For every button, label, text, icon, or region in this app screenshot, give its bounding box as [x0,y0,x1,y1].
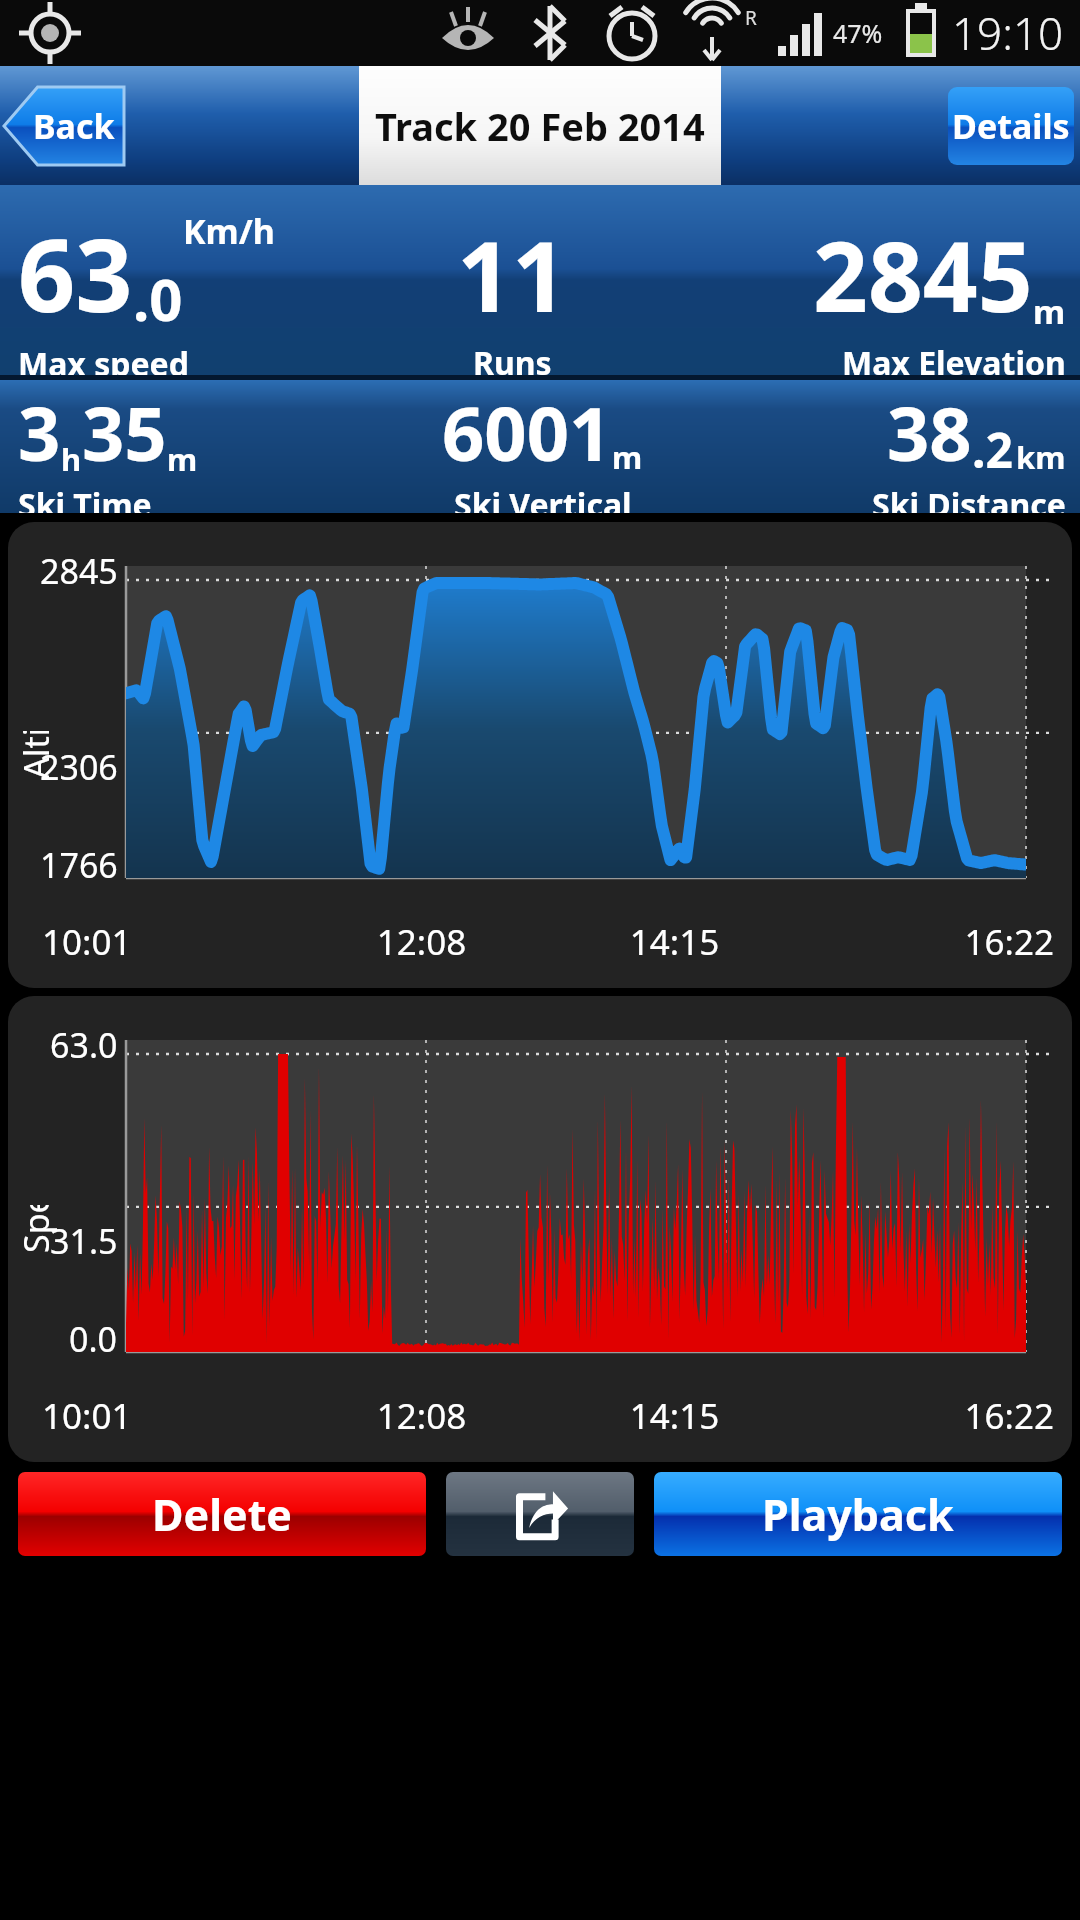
button[interactable]: Share [446,1472,634,1556]
staticText: 1766 [40,842,118,888]
staticText: Ski Time [18,483,152,513]
staticText: 3 [18,382,61,483]
staticText: .2 [972,417,1013,482]
staticText: 35 [82,382,167,483]
staticText: Track 20 Feb 2014 [375,100,705,152]
staticText: 14:15 [548,1392,801,1440]
staticText: m [167,438,198,480]
staticText: 2845 [813,209,1033,340]
button[interactable]: 2845 [8,522,1072,988]
staticText: 47% [833,16,883,50]
staticText: R [745,5,757,31]
staticText: Delete [152,1485,292,1544]
staticText: Details [952,103,1070,149]
staticText: Max speed [18,342,189,375]
button[interactable]: 63.0 [8,996,1072,1462]
staticText: Runs [473,341,552,375]
staticText: Playback [762,1485,954,1544]
staticText: 12:08 [295,918,548,966]
staticText: 10:01 [42,918,295,966]
staticText: 12:08 [295,1392,548,1440]
staticText: Back [33,103,115,149]
staticText: 31.5 [50,1218,118,1264]
staticText: 11 [457,209,567,340]
staticText: 0.0 [69,1316,118,1362]
button[interactable]: Playback [654,1472,1062,1556]
staticText: km [1016,436,1066,478]
staticText: 2845 [40,548,118,594]
staticText: 63 [18,205,133,341]
staticText: Altitude (m) [13,731,59,779]
staticText: 6001 [442,382,612,483]
staticText: 63.0 [50,1022,118,1068]
staticText: m [612,436,643,478]
button[interactable]: Back [4,87,124,165]
staticText: 38 [887,382,972,483]
staticText: Max Elevation [842,341,1066,375]
staticText: 10:01 [42,1392,295,1440]
staticText: 16:22 [801,918,1054,966]
staticText: 14:15 [548,918,801,966]
staticText: Speed (Km/h) [13,1205,59,1253]
staticText: 19:10 [952,3,1064,63]
staticText: Ski Distance [872,483,1066,513]
staticText: .0 [133,259,183,338]
staticText: Ski Vertical [454,483,632,513]
button[interactable]: Delete [18,1472,426,1556]
staticText: Km/h [183,208,275,254]
staticText: h [61,438,82,480]
staticText: 2306 [40,744,118,790]
staticText: 16:22 [801,1392,1054,1440]
button[interactable]: Details [948,87,1074,165]
staticText: m [1033,289,1066,334]
